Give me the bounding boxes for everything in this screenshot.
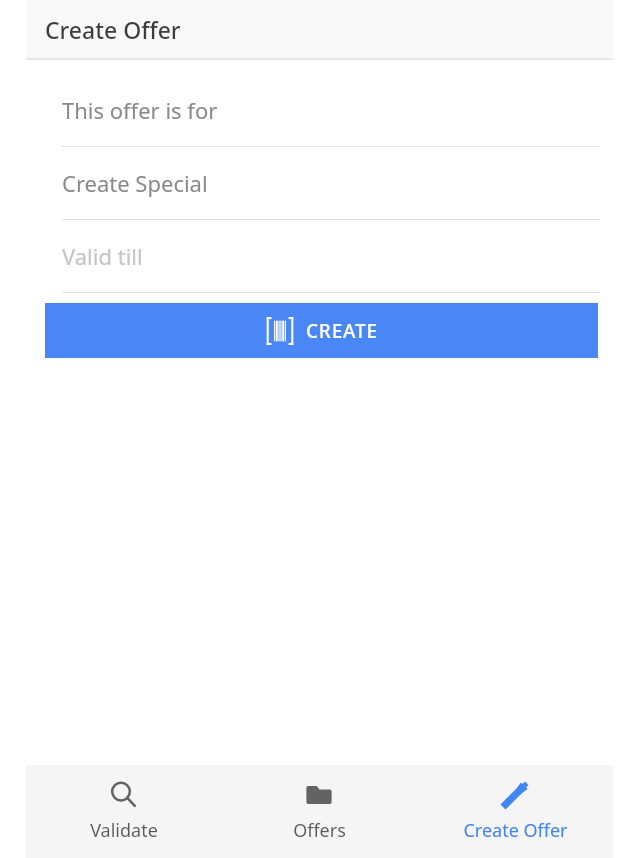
other: Barcode [265, 317, 295, 345]
staticText: CREATE [306, 318, 378, 344]
button[interactable]: Offers [221, 765, 417, 858]
button[interactable]: Create Special [26, 147, 613, 220]
button[interactable]: Create Offer [417, 765, 613, 858]
staticText: Validate [90, 818, 158, 843]
staticText: Valid till [62, 241, 143, 271]
staticText: Offers [293, 818, 346, 843]
other: Validate [109, 780, 139, 810]
button[interactable]: Validate [26, 765, 221, 858]
button[interactable]: This offer is for [26, 74, 613, 147]
button[interactable]: Valid till [26, 220, 613, 293]
staticText: Create Offer [463, 818, 568, 843]
staticText: Create Special [62, 168, 208, 198]
staticText: This offer is for [62, 95, 218, 125]
button[interactable]: Barcode [45, 303, 598, 358]
staticText: Create Offer [45, 14, 181, 45]
other: Create Offer [500, 780, 530, 810]
other: Offers [304, 780, 334, 810]
